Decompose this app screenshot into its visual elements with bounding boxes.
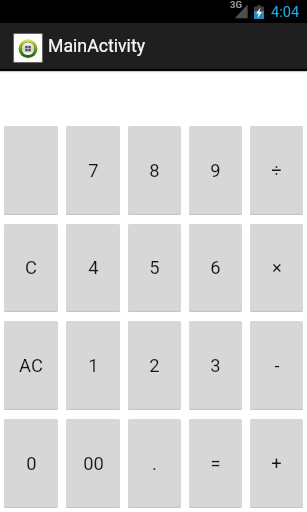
- staticText: C: [25, 257, 37, 279]
- button[interactable]: 9: [189, 126, 242, 215]
- staticText: 9: [210, 160, 221, 182]
- staticText: ÷: [271, 160, 282, 182]
- staticText: -: [274, 355, 280, 377]
- staticText: =: [210, 453, 221, 475]
- staticText: 2: [149, 355, 160, 377]
- button[interactable]: 2: [128, 321, 181, 410]
- button[interactable]: C: [4, 224, 58, 312]
- button[interactable]: ×: [250, 224, 303, 312]
- other: App icon: [13, 33, 43, 63]
- staticText: 00: [83, 453, 104, 475]
- staticText: 8: [149, 160, 160, 182]
- button[interactable]: 0: [4, 419, 58, 508]
- button[interactable]: 4: [66, 224, 120, 312]
- staticText: 4:04: [271, 3, 300, 20]
- staticText: AC: [19, 355, 43, 377]
- button[interactable]: 8: [128, 126, 181, 215]
- staticText: 1: [88, 355, 99, 377]
- button[interactable]: +: [250, 419, 303, 508]
- staticText: 6: [210, 257, 221, 279]
- staticText: .: [152, 453, 157, 475]
- staticText: 3G: [230, 0, 243, 10]
- button[interactable]: =: [189, 419, 242, 508]
- button[interactable]: 6: [189, 224, 242, 312]
- staticText: 5: [149, 257, 160, 279]
- button[interactable]: 5: [128, 224, 181, 312]
- button[interactable]: 1: [66, 321, 120, 410]
- button[interactable]: -: [250, 321, 303, 410]
- staticText: ×: [272, 257, 282, 279]
- staticText: 0: [26, 453, 37, 475]
- staticText: MainActivity: [48, 36, 146, 57]
- button[interactable]: .: [128, 419, 181, 508]
- staticText: +: [271, 453, 282, 475]
- button[interactable]: ÷: [250, 126, 303, 215]
- button[interactable]: 00: [66, 419, 120, 508]
- button[interactable]: App icon: [0, 23, 307, 69]
- button[interactable]: 3: [189, 321, 242, 410]
- staticText: 3: [210, 355, 221, 377]
- button[interactable]: 7: [66, 126, 120, 215]
- button[interactable]: AC: [4, 321, 58, 410]
- staticText: 4: [88, 257, 99, 279]
- staticText: 7: [88, 160, 99, 182]
